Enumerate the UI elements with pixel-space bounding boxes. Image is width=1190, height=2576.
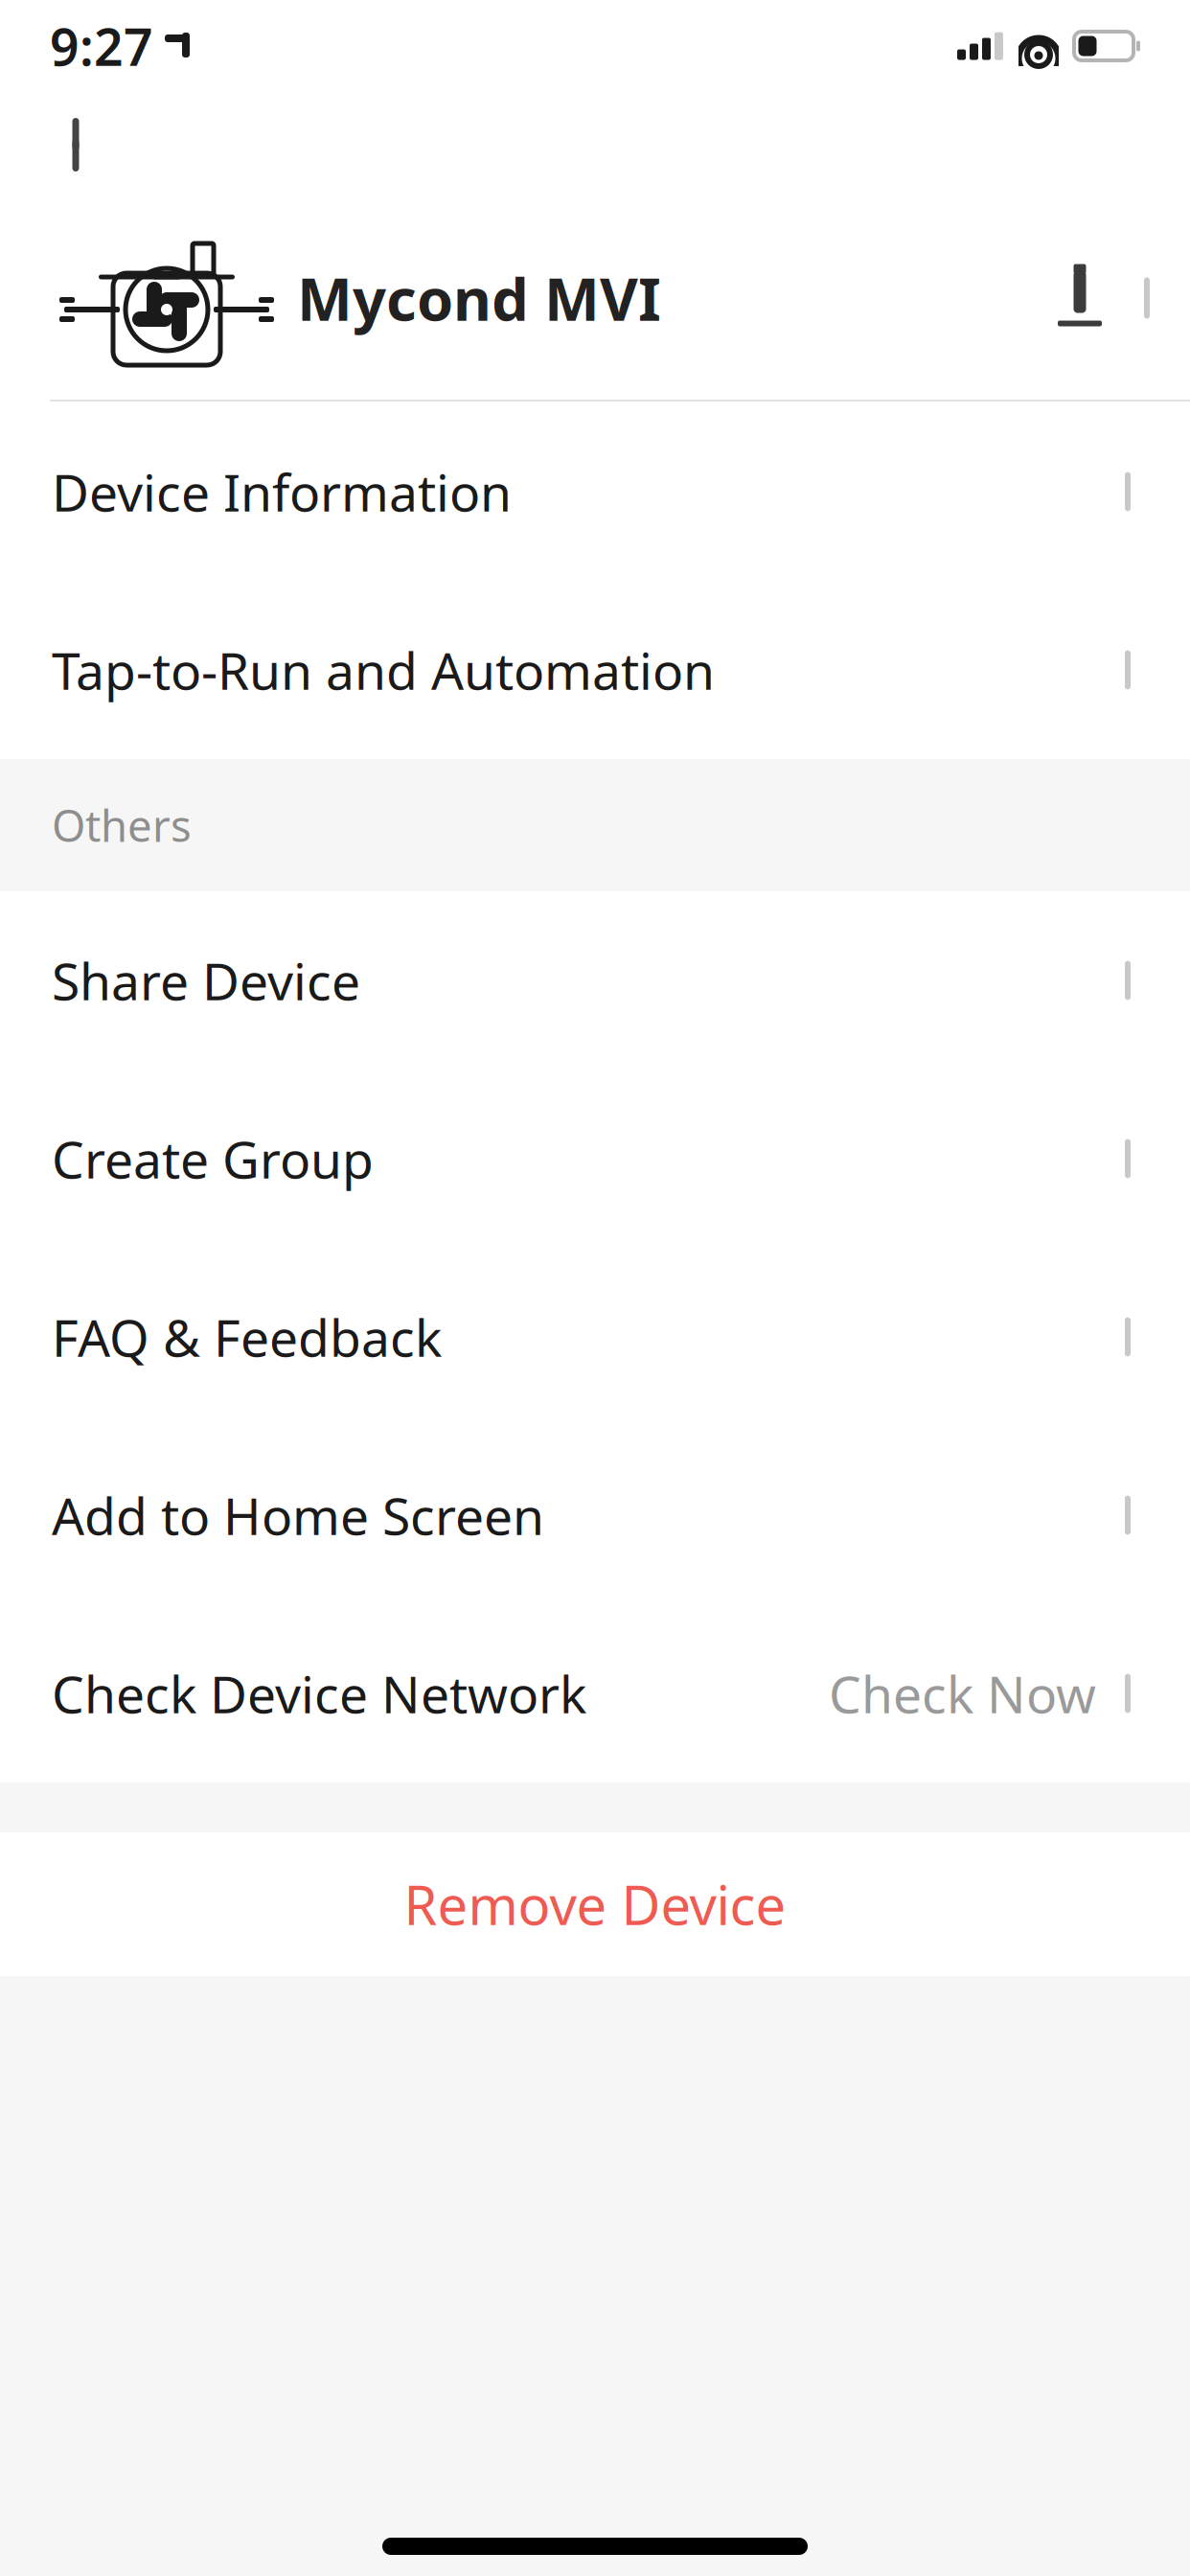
staticText: Share Device <box>52 946 360 1014</box>
staticText: Mycond MVI <box>297 259 661 337</box>
staticText: Tap-to-Run and Automation <box>52 636 715 704</box>
button[interactable]: Create Group <box>0 1069 1190 1248</box>
staticText: 9:27 <box>50 12 153 80</box>
staticText: Check Now <box>829 1659 1096 1727</box>
button[interactable]: Tap-to-Run and Automation <box>0 581 1190 759</box>
staticText: Add to Home Screen <box>52 1481 544 1549</box>
staticText: Remove Device <box>404 1869 786 1940</box>
button[interactable]: Check Device Network <box>0 1604 1190 1782</box>
button[interactable]: Remove Device <box>0 1832 1190 1976</box>
staticText: Others <box>52 796 192 854</box>
button[interactable]: Add to Home Screen <box>0 1426 1190 1604</box>
button[interactable]: Device Information <box>0 402 1190 581</box>
staticText: Device Information <box>52 458 512 526</box>
staticText: FAQ & Feedback <box>52 1303 442 1371</box>
button[interactable]: FAQ & Feedback <box>0 1248 1190 1426</box>
button[interactable]: Mycond MVI <box>0 197 1190 399</box>
button[interactable]: Back <box>33 102 119 188</box>
staticText: Check Device Network <box>52 1659 586 1727</box>
button[interactable]: Share Device <box>0 891 1190 1069</box>
staticText: Create Group <box>52 1125 374 1193</box>
